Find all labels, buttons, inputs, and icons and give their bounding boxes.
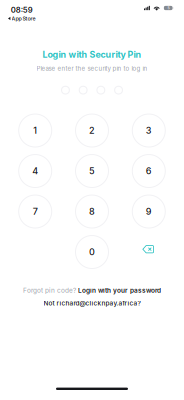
staticText: 8 xyxy=(89,206,95,217)
button[interactable]: Back to App Store xyxy=(8,15,35,22)
button[interactable]: 0 xyxy=(75,235,108,268)
button[interactable]: 6 xyxy=(132,154,165,187)
button[interactable]: 3 xyxy=(132,114,165,147)
button[interactable]: 7 xyxy=(19,195,52,228)
staticText: 7 xyxy=(33,206,38,217)
staticText: App Store xyxy=(11,15,35,22)
staticText: Not richard@clicknpay.africa? xyxy=(43,299,140,307)
staticText: 5 xyxy=(89,165,95,176)
staticText: 2 xyxy=(89,125,95,136)
button[interactable]: 9 xyxy=(132,195,165,228)
button[interactable]: Delete xyxy=(132,235,165,268)
staticText: 9 xyxy=(146,206,152,217)
staticText: 6 xyxy=(146,165,152,176)
staticText: Please enter the security pin to log in xyxy=(36,65,147,72)
button[interactable]: 8 xyxy=(75,195,108,228)
button[interactable]: Not richard@clicknpay.africa? xyxy=(43,299,140,307)
staticText: Forgot pin code? xyxy=(23,286,78,294)
button[interactable]: 5 xyxy=(75,154,108,187)
button[interactable]: 2 xyxy=(75,114,108,147)
staticText: 0 xyxy=(89,246,95,257)
button[interactable]: 4 xyxy=(19,154,52,187)
staticText: Login with Security Pin xyxy=(42,49,141,60)
staticText: 3 xyxy=(146,125,152,136)
staticText: 5 xyxy=(167,6,169,10)
staticText: 4 xyxy=(32,165,38,176)
staticText: 08:59 xyxy=(11,5,33,15)
staticText: 1 xyxy=(33,125,37,136)
button[interactable]: Forgot pin code? xyxy=(23,286,161,294)
button[interactable]: 1 xyxy=(19,114,52,147)
staticText: Login with your password xyxy=(78,286,161,294)
